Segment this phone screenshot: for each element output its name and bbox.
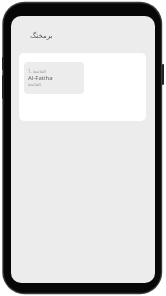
other: Volume down — [2, 75, 4, 99]
other: Power — [162, 64, 164, 85]
staticText: Al-Fatiha — [28, 74, 53, 82]
button[interactable]: 1. الفاتحة — [24, 62, 84, 94]
staticText: برمختگ — [30, 32, 53, 40]
staticText: الفاتحة — [28, 82, 41, 87]
other: Volume up — [2, 57, 4, 70]
staticText: 1. الفاتحة — [28, 68, 46, 74]
